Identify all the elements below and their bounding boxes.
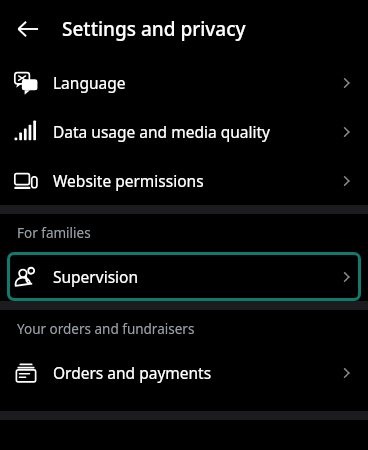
staticText: Settings and privacy	[62, 16, 246, 42]
button[interactable]: Website permissions	[0, 156, 368, 205]
staticText: Language	[53, 72, 337, 93]
button[interactable]: Data usage and media quality	[0, 107, 368, 156]
staticText: Website permissions	[53, 170, 337, 191]
button[interactable]: Orders and payments	[0, 348, 368, 397]
staticText: Supervision	[53, 266, 337, 287]
button[interactable]: Back	[8, 9, 48, 49]
staticText: Your orders and fundraisers	[17, 320, 195, 338]
button[interactable]: Supervision	[7, 252, 361, 301]
staticText: Data usage and media quality	[53, 121, 337, 142]
staticText: For families	[17, 224, 91, 242]
staticText: Orders and payments	[53, 362, 337, 383]
button[interactable]: Language	[0, 58, 368, 107]
